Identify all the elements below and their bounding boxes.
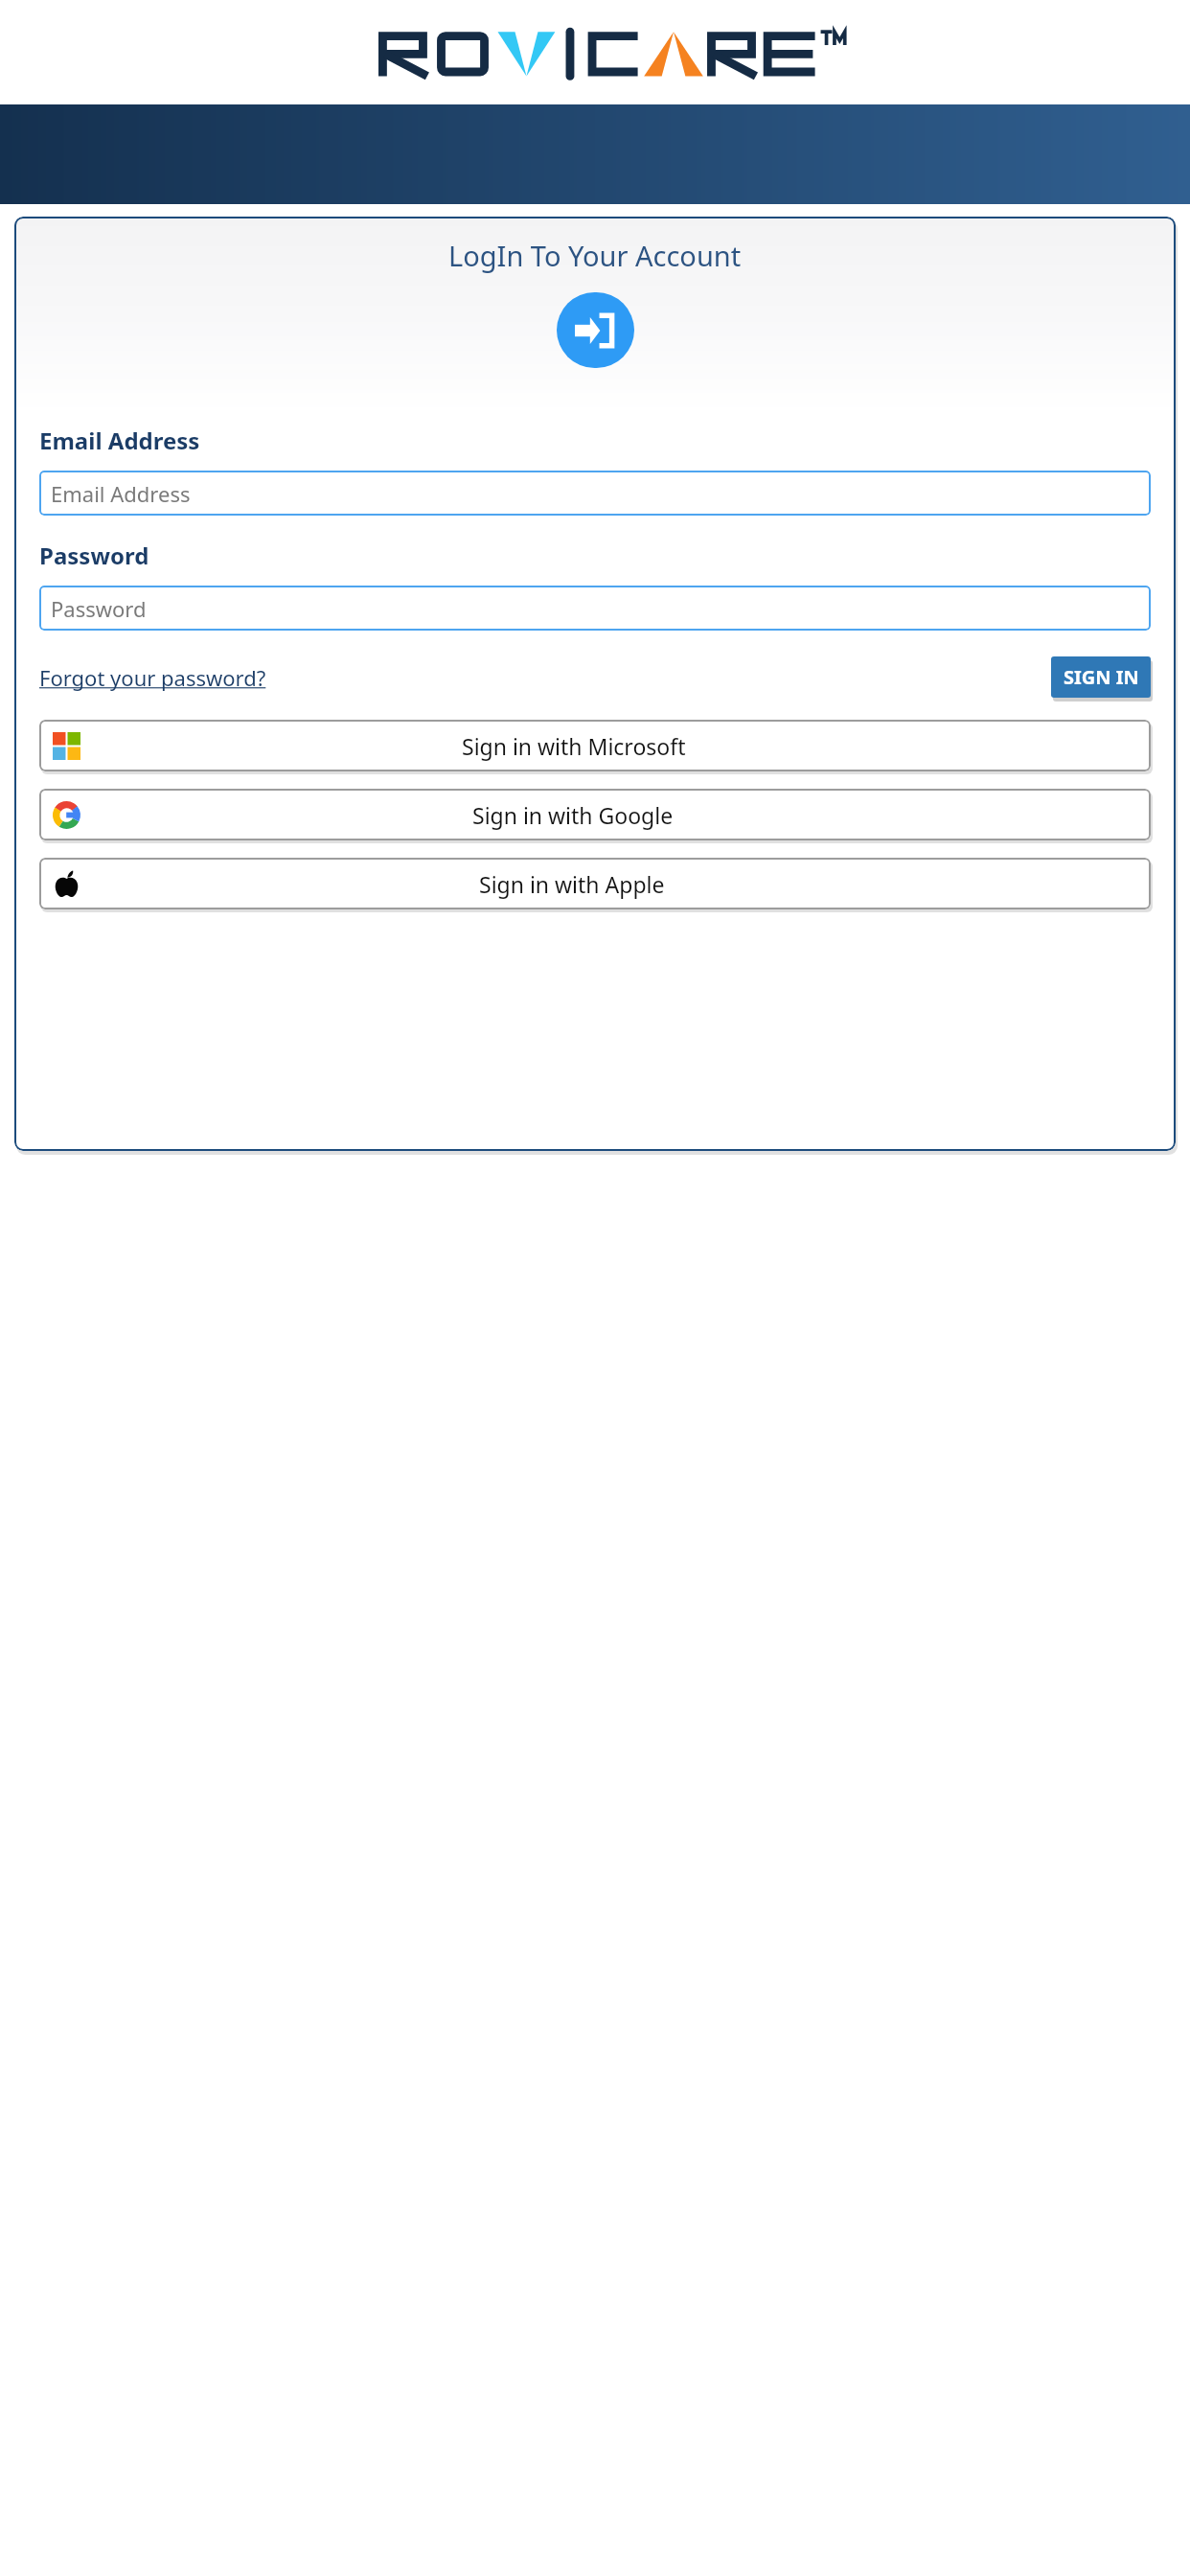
staticText: Email Address xyxy=(39,425,200,456)
button[interactable]: Login xyxy=(557,292,634,368)
staticText: SIGN IN xyxy=(1064,664,1139,690)
button[interactable]: SIGN IN xyxy=(1051,656,1151,698)
button[interactable]: Email Address xyxy=(39,471,1151,516)
button[interactable]: Password xyxy=(39,586,1151,631)
button[interactable]: Forgot your password? xyxy=(39,658,266,697)
staticText: Sign in with Microsoft xyxy=(462,731,686,761)
button[interactable]: Sign in with Microsoft xyxy=(39,720,1151,771)
staticText: Sign in with Google xyxy=(472,800,674,830)
button[interactable]: Sign in with Apple xyxy=(39,858,1151,909)
button[interactable]: Sign in with Google xyxy=(39,789,1151,840)
staticText: Password xyxy=(51,594,147,623)
staticText: LogIn To Your Account xyxy=(448,237,742,274)
staticText: Password xyxy=(39,540,149,571)
staticText: Email Address xyxy=(51,479,191,508)
staticText: Forgot your password? xyxy=(39,663,266,692)
staticText: Sign in with Apple xyxy=(479,869,665,899)
